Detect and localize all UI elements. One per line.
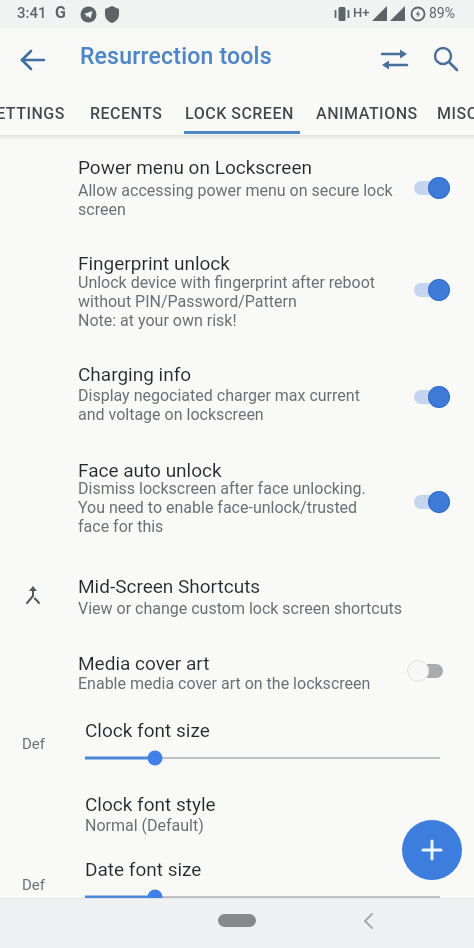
button[interactable] — [412, 278, 450, 302]
staticText: Resurrection tools — [80, 43, 272, 70]
staticText: Date font size — [85, 858, 202, 880]
button[interactable] — [402, 820, 462, 880]
button[interactable]: Clock font style — [0, 777, 474, 841]
button[interactable]: RECENTS — [80, 92, 170, 134]
staticText: Display negociated charger max current a… — [78, 386, 360, 424]
button[interactable] — [17, 44, 49, 76]
staticText: Clock font style — [85, 793, 216, 815]
button[interactable]: Face auto unlock — [0, 442, 474, 554]
button[interactable] — [430, 42, 464, 76]
staticText: Mid-Screen Shortcuts — [78, 575, 261, 597]
button[interactable]: Media cover art — [0, 636, 474, 698]
staticText: RECENTS — [90, 104, 163, 123]
button[interactable] — [378, 43, 412, 77]
staticText: G — [55, 3, 66, 22]
staticText: Normal (Default) — [85, 816, 204, 835]
staticText: Def — [22, 735, 46, 753]
button[interactable] — [412, 176, 450, 200]
staticText: MISC — [437, 104, 474, 123]
button[interactable]: Mid-Screen Shortcuts — [0, 559, 474, 629]
staticText: 3:41 — [17, 4, 47, 22]
button[interactable]: Clock font size — [0, 703, 474, 777]
staticText: Allow accessing power menu on secure loc… — [78, 181, 393, 219]
staticText: Unlock device with fingerprint after reb… — [78, 273, 376, 330]
button[interactable] — [358, 910, 380, 932]
button[interactable]: Fingerprint unlock — [0, 235, 474, 345]
staticText: Dismiss lockscreen after face unlocking.… — [78, 479, 366, 536]
staticText: 89% — [429, 5, 455, 21]
button[interactable]: Power menu on Lockscreen — [0, 140, 474, 232]
staticText: H+ — [353, 5, 370, 20]
button[interactable]: Charging info — [0, 346, 474, 442]
staticText: Fingerprint unlock — [78, 252, 230, 274]
button[interactable] — [218, 914, 256, 927]
staticText: Face auto unlock — [78, 459, 222, 481]
button[interactable]: Date font size — [0, 846, 474, 898]
staticText: Def — [22, 876, 46, 894]
staticText: Enable media cover art on the lockscreen — [78, 674, 371, 693]
staticText: Charging info — [78, 363, 192, 385]
button[interactable] — [412, 490, 450, 514]
button[interactable] — [407, 659, 445, 683]
button[interactable]: LOCK SCREEN — [175, 92, 300, 134]
staticText: ANIMATIONS — [316, 104, 418, 123]
staticText: LOCK SCREEN — [185, 104, 294, 123]
staticText: View or change custom lock screen shortc… — [78, 599, 402, 618]
staticText: Power menu on Lockscreen — [78, 156, 312, 178]
staticText: Clock font size — [85, 719, 210, 741]
button[interactable] — [412, 385, 450, 409]
button[interactable]: ANIMATIONS — [306, 92, 420, 134]
staticText: Media cover art — [78, 652, 210, 674]
staticText: SETTINGS — [0, 104, 65, 123]
